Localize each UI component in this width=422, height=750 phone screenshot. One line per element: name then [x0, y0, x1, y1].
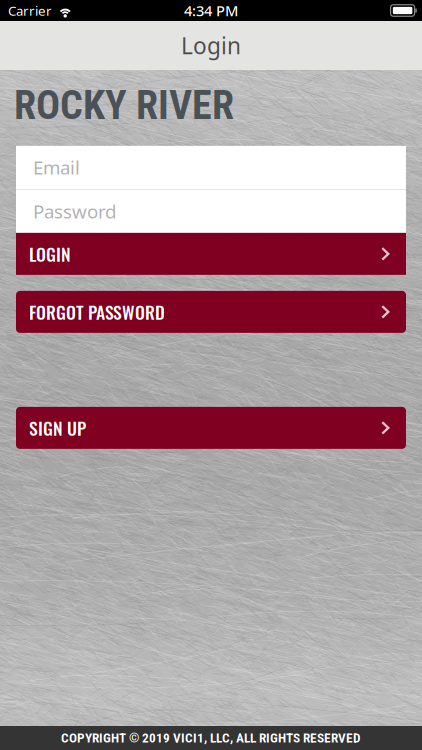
staticText: SIGN UP: [29, 415, 86, 441]
staticText: LOGIN: [29, 241, 71, 267]
staticText: Password: [33, 199, 116, 224]
staticText: COPYRIGHT © 2019 VICI1, LLC, ALL RIGHTS …: [61, 730, 361, 746]
staticText: Login: [181, 30, 241, 60]
button[interactable]: LOGIN: [16, 233, 406, 275]
staticText: ROCKY RIVER: [14, 82, 234, 129]
button[interactable]: FORGOT PASSWORD: [16, 291, 406, 333]
staticText: 4:34 PM: [184, 1, 238, 20]
staticText: Carrier: [8, 2, 52, 19]
staticText: Email: [33, 155, 80, 180]
button[interactable]: SIGN UP: [16, 407, 406, 449]
staticText: FORGOT PASSWORD: [29, 299, 165, 325]
